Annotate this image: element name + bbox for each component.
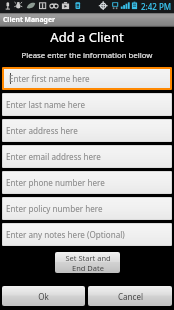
button[interactable]: Enter policy number here bbox=[3, 198, 171, 219]
button[interactable]: Ok bbox=[2, 286, 85, 306]
staticText: Cancel bbox=[118, 291, 143, 302]
staticText: Ok bbox=[38, 291, 49, 302]
button[interactable]: Enter address here bbox=[3, 120, 171, 141]
staticText: Enter email address here bbox=[6, 151, 101, 162]
staticText: Enter any notes here (Optional) bbox=[6, 229, 125, 240]
staticText: Add a Client bbox=[0, 28, 174, 46]
button[interactable]: Cancel bbox=[88, 286, 172, 306]
staticText: 2:42 PM bbox=[141, 1, 172, 12]
button[interactable]: Enter last name here bbox=[3, 94, 171, 115]
button[interactable]: Enter any notes here (Optional) bbox=[3, 224, 171, 245]
staticText: Enter last name here bbox=[6, 99, 86, 110]
button[interactable]: Enter phone number here bbox=[3, 172, 171, 193]
staticText: Client Manager bbox=[3, 15, 55, 24]
staticText: Enter address here bbox=[6, 125, 78, 136]
staticText: Set Start and End Date bbox=[65, 253, 111, 273]
staticText: Enter first name here bbox=[9, 73, 90, 84]
button[interactable]: Enter email address here bbox=[3, 146, 171, 167]
staticText: Enter phone number here bbox=[6, 177, 105, 188]
staticText: Enter policy number here bbox=[6, 203, 103, 214]
button[interactable]: Enter first name here bbox=[4, 69, 170, 88]
button[interactable]: Set Start and End Date bbox=[55, 252, 120, 273]
staticText: Please enter the information bellow bbox=[0, 50, 174, 61]
